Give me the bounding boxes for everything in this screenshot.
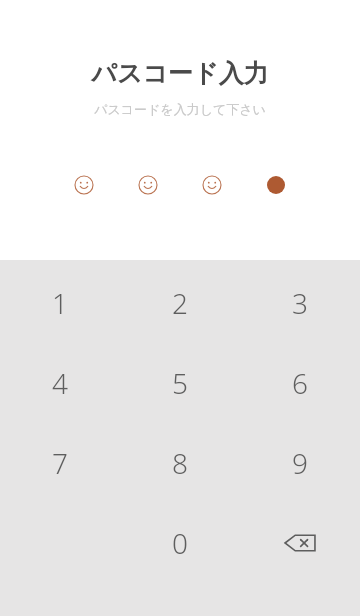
staticText: 2 bbox=[172, 284, 188, 322]
button[interactable]: 6 bbox=[240, 343, 360, 423]
button[interactable]: Delete bbox=[240, 503, 360, 583]
button[interactable]: 7 bbox=[0, 423, 120, 503]
staticText: 6 bbox=[292, 364, 308, 402]
staticText: パスコード入力 bbox=[91, 58, 269, 89]
other: Delete bbox=[283, 530, 317, 556]
button[interactable]: 0 bbox=[120, 503, 240, 583]
staticText: 8 bbox=[172, 444, 188, 482]
staticText: 4 bbox=[52, 364, 68, 402]
staticText: 3 bbox=[292, 284, 308, 322]
staticText: 7 bbox=[52, 444, 68, 482]
staticText: パスコードを入力して下さい bbox=[94, 101, 266, 117]
staticText: 5 bbox=[172, 364, 188, 402]
staticText: 0 bbox=[172, 524, 188, 562]
button[interactable]: 2 bbox=[120, 263, 240, 343]
staticText: 1 bbox=[52, 284, 68, 322]
button[interactable]: 5 bbox=[120, 343, 240, 423]
button[interactable]: 4 bbox=[0, 343, 120, 423]
button[interactable]: 1 bbox=[0, 263, 120, 343]
button[interactable]: 3 bbox=[240, 263, 360, 343]
button[interactable]: 9 bbox=[240, 423, 360, 503]
button[interactable]: 8 bbox=[120, 423, 240, 503]
staticText: 9 bbox=[292, 444, 308, 482]
